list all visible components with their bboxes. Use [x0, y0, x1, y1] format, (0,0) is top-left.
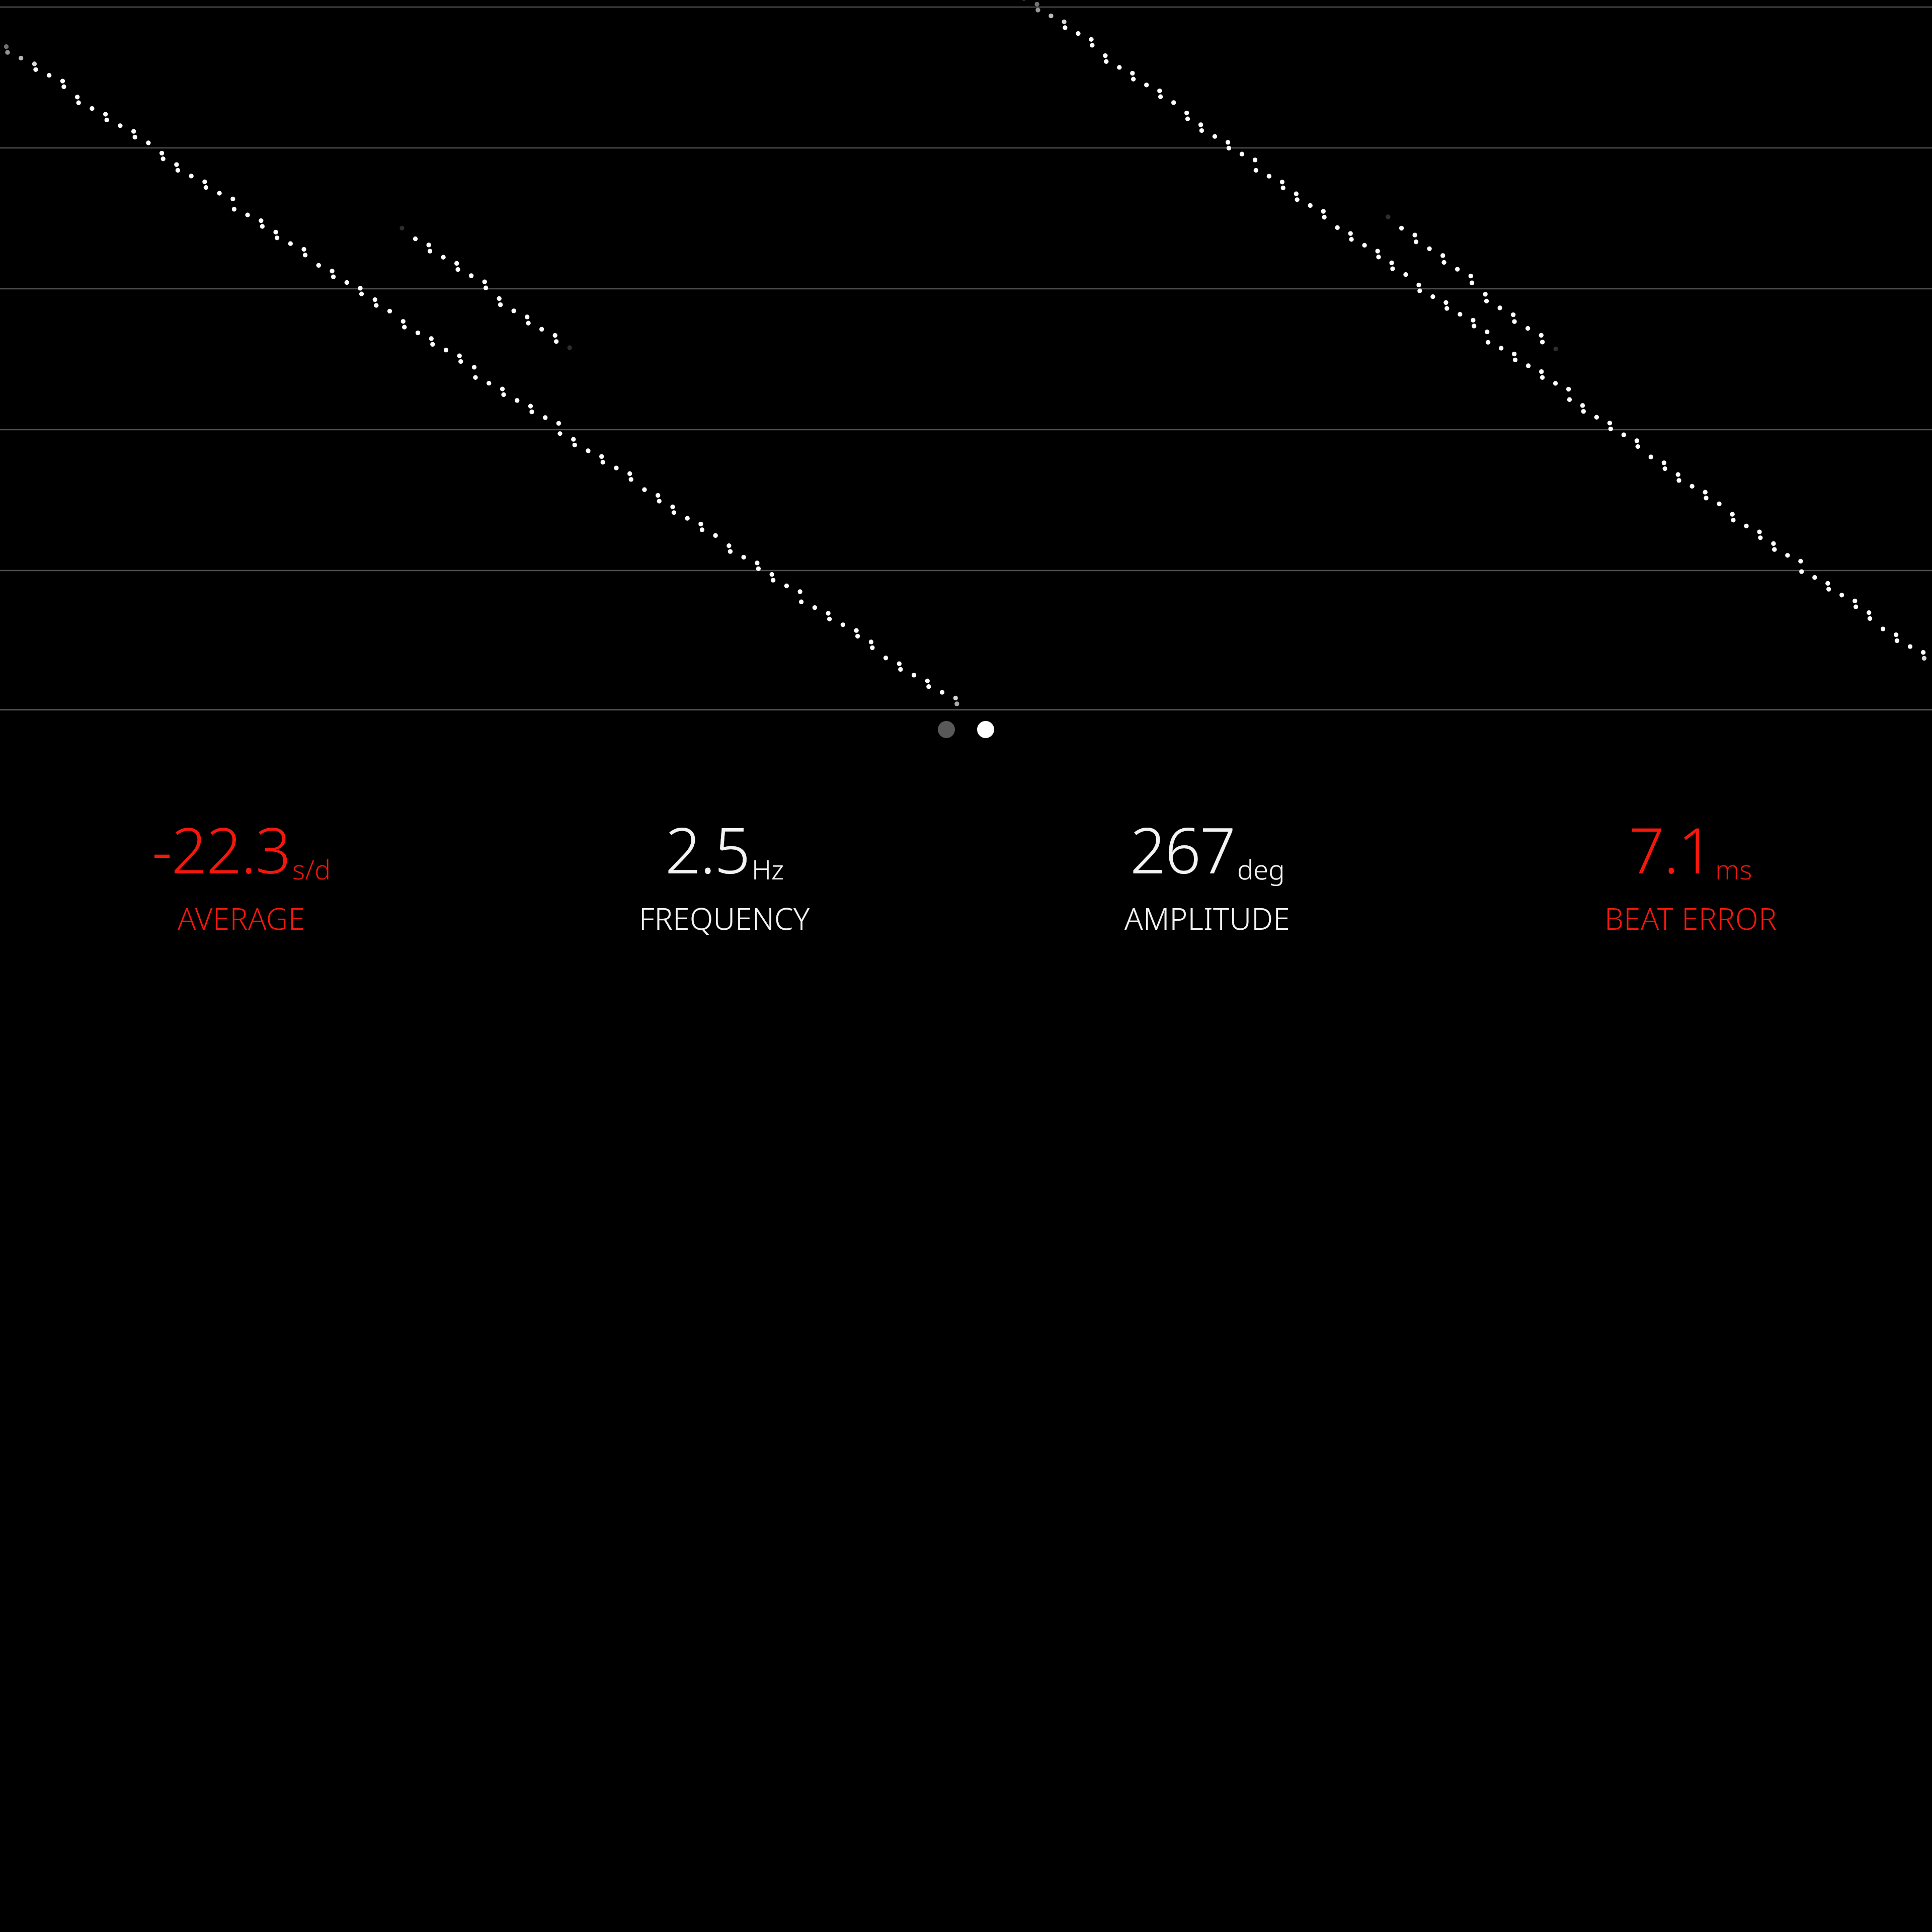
button[interactable]: -22.3 — [0, 806, 483, 939]
staticText: AVERAGE — [178, 898, 305, 939]
staticText: BEAT ERROR — [1604, 898, 1777, 939]
button[interactable]: 2.5 — [483, 806, 966, 939]
staticText: deg — [1237, 850, 1285, 888]
staticText: FREQUENCY — [639, 898, 810, 939]
staticText: -22.3 — [152, 806, 290, 892]
staticText: ms — [1715, 850, 1752, 888]
staticText: s/d — [292, 850, 331, 888]
staticText: Hz — [752, 850, 784, 888]
button[interactable]: 267 — [966, 806, 1449, 939]
button[interactable]: Page 1 — [938, 721, 955, 738]
button[interactable]: Page 2, selected — [977, 721, 994, 738]
staticText: 7.1 — [1629, 806, 1713, 892]
staticText: AMPLITUDE — [1124, 898, 1291, 939]
staticText: 2.5 — [665, 806, 750, 892]
button[interactable]: Timegrapher trace — [0, 0, 1932, 710]
button[interactable]: 7.1 — [1449, 806, 1932, 939]
staticText: 267 — [1130, 806, 1235, 892]
